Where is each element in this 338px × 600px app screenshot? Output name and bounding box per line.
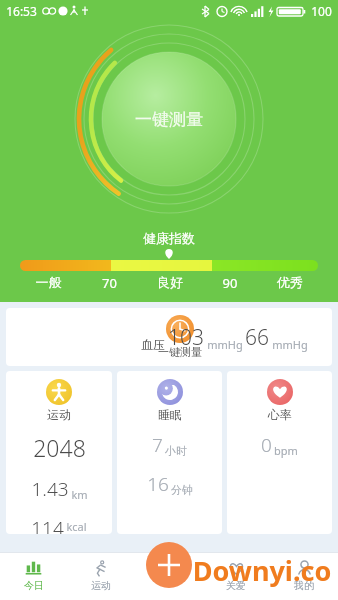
staticText: 小时: [165, 444, 187, 458]
button[interactable]: 关爱: [202, 552, 270, 600]
staticText: 运动: [91, 579, 111, 592]
button[interactable]: 运动: [6, 371, 112, 534]
staticText: 100: [311, 3, 332, 19]
staticText: 1.43: [31, 476, 69, 502]
staticText: 血压: [141, 337, 165, 352]
button[interactable]: 今日: [0, 552, 67, 600]
button[interactable]: 运动: [67, 552, 134, 600]
staticText: 优秀: [260, 274, 320, 290]
button[interactable]: 睡眠: [117, 371, 222, 534]
staticText: 66: [245, 323, 269, 352]
staticText: 16: [147, 471, 169, 497]
staticText: mmHg: [272, 337, 308, 352]
staticText: 我的: [294, 579, 314, 592]
staticText: 2048: [33, 432, 86, 463]
button[interactable]: 一键测量: [6, 308, 332, 366]
staticText: Downyi.com: [186, 552, 338, 600]
staticText: 一般: [18, 274, 79, 290]
staticText: 103: [168, 323, 204, 352]
button[interactable]: 我的: [270, 552, 338, 600]
staticText: 114: [31, 515, 64, 534]
staticText: bpm: [274, 443, 298, 458]
staticText: km: [71, 487, 88, 502]
staticText: 16:53: [6, 3, 37, 19]
staticText: 7: [152, 432, 163, 458]
staticText: 一键测量: [158, 345, 202, 359]
staticText: mmHg: [207, 337, 243, 352]
staticText: 今日: [24, 579, 44, 592]
staticText: 90: [200, 274, 260, 292]
button[interactable]: 一键测量: [74, 24, 264, 214]
staticText: 0: [261, 432, 272, 458]
staticText: kcal: [66, 519, 87, 534]
staticText: 心率: [268, 407, 292, 422]
button[interactable]: Add: [146, 542, 192, 588]
staticText: 分钟: [171, 483, 193, 497]
staticText: 关爱: [226, 579, 246, 592]
staticText: 良好: [140, 274, 200, 290]
staticText: 一键测量: [135, 109, 203, 130]
staticText: 运动: [47, 407, 71, 422]
staticText: 70: [79, 274, 140, 292]
staticText: 睡眠: [158, 407, 182, 422]
button[interactable]: 心率: [227, 371, 332, 534]
staticText: 健康指数: [143, 230, 195, 246]
